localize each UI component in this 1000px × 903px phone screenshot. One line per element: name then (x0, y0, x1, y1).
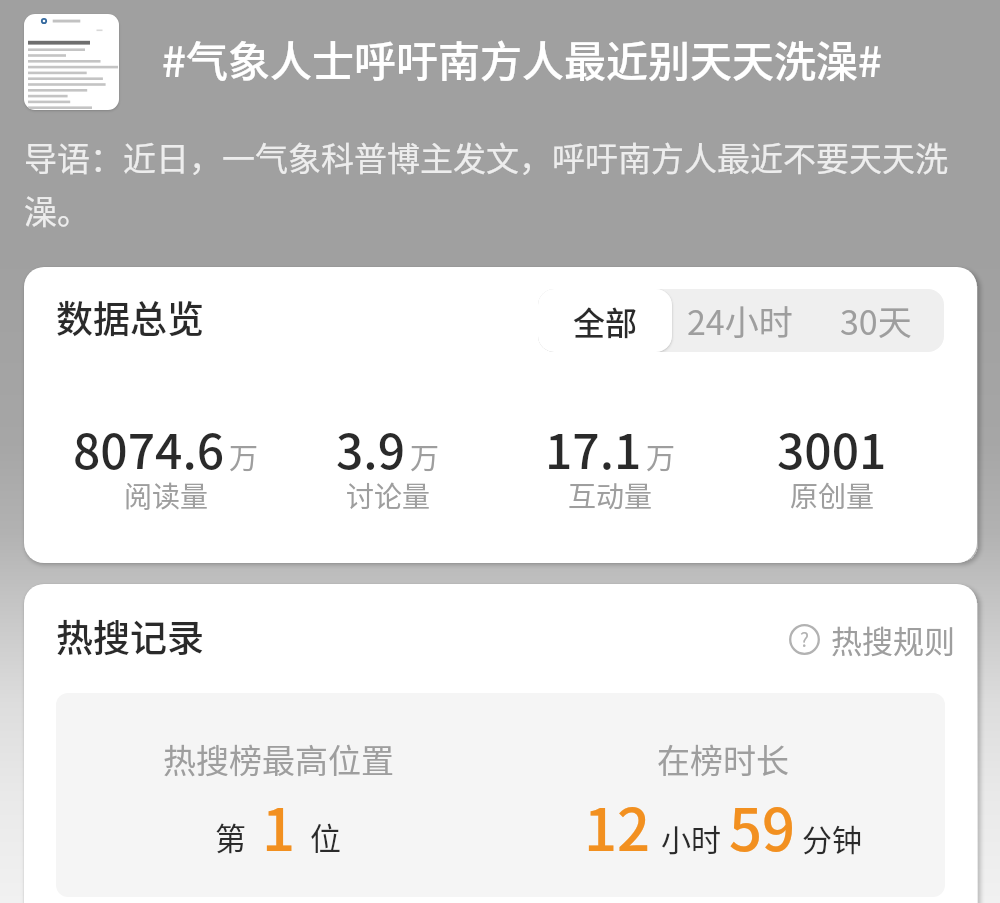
staticText: 1 (262, 784, 296, 868)
staticText: 原创量 (790, 475, 875, 516)
staticText: 8074.6 (73, 413, 225, 483)
staticText: ? (800, 625, 810, 653)
button[interactable]: 微博原文截图 (24, 14, 119, 110)
staticText: 数据总览 (56, 290, 204, 344)
staticText: 3.9 (336, 413, 406, 483)
staticText: 分钟 (802, 816, 862, 859)
staticText: 万 (646, 435, 676, 477)
staticText: 在榜时长 (657, 735, 789, 783)
staticText: 导语：近日，一气象科普博主发文，呼吁南方人最近不要天天洗澡。 (24, 133, 949, 234)
staticText: 热搜记录 (56, 609, 204, 663)
staticText: #气象人士呼吁南方人最近别天天洗澡# (162, 28, 882, 89)
staticText: 12 (584, 784, 651, 868)
staticText: 万 (229, 435, 259, 477)
button[interactable]: 24小时 (672, 289, 808, 352)
staticText: 讨论量 (346, 475, 431, 516)
button[interactable]: 全部 (538, 289, 672, 352)
staticText: 3001 (777, 413, 887, 483)
staticText: 59 (729, 784, 796, 868)
staticText: 万 (410, 435, 440, 477)
staticText: 位 (310, 814, 341, 859)
staticText: 30天 (840, 296, 912, 345)
staticText: 17.1 (545, 413, 642, 483)
staticText: 小时 (661, 816, 721, 859)
staticText: 互动量 (568, 475, 653, 516)
staticText: 热搜规则 (831, 617, 955, 662)
staticText: 第 (215, 814, 246, 859)
staticText: 24小时 (687, 296, 793, 345)
staticText: 热搜榜最高位置 (163, 735, 394, 783)
button[interactable]: 30天 (808, 289, 944, 352)
staticText: 阅读量 (124, 475, 209, 516)
button[interactable]: 热搜规则 (789, 617, 955, 662)
staticText: 全部 (573, 298, 638, 344)
